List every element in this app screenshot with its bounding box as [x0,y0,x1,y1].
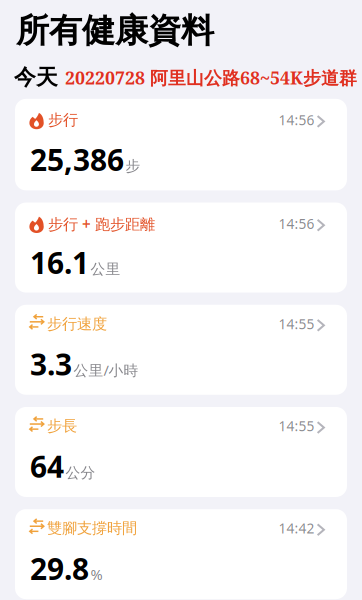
staticText: 今天 [14,64,58,91]
staticText: 14:55 [278,417,314,435]
staticText: 步行 [48,110,78,129]
staticText: 公里 [90,260,120,278]
staticText: 公分 [65,464,95,482]
staticText: 16.1 [30,242,89,283]
staticText: 14:55 [278,314,314,333]
staticText: 步行速度 [47,314,107,333]
button[interactable]: 步行速度 [15,305,347,395]
staticText: 14:56 [278,111,314,129]
staticText: 64 [30,446,64,486]
button[interactable]: 步行 + 跑步距離 [15,203,347,293]
staticText: 步長 [47,416,77,436]
staticText: % [90,564,102,584]
staticText: 公里/小時 [73,360,138,380]
staticText: 所有健康資料 [16,10,214,52]
staticText: 20220728 阿里山公路68~54K步道群 [65,65,357,90]
staticText: 步行 + 跑步距離 [48,213,155,234]
staticText: 29.8 [30,548,89,589]
button[interactable]: 步長 [15,407,347,497]
staticText: 14:42 [278,519,314,538]
staticText: 雙腳支撐時間 [47,519,137,538]
button[interactable]: 雙腳支撐時間 [15,509,347,599]
staticText: 14:56 [278,214,314,233]
button[interactable]: 步行 [15,99,347,190]
staticText: 步 [125,157,140,175]
staticText: 25,386 [30,139,124,180]
staticText: 3.3 [30,344,72,384]
